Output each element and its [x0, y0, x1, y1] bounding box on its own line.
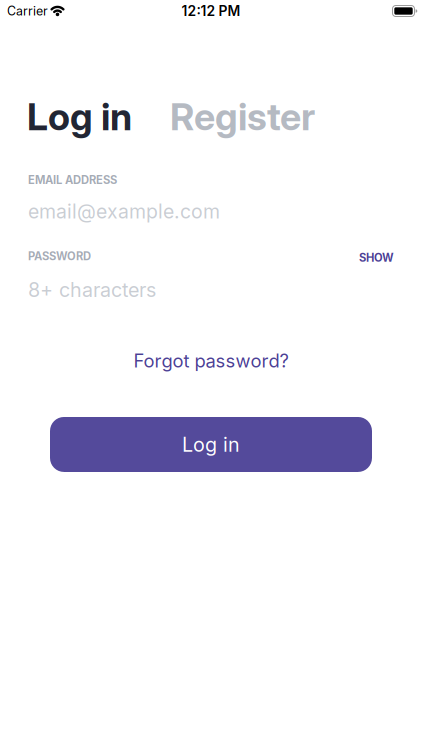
button[interactable]: Register	[170, 94, 315, 139]
staticText: Forgot password?	[133, 350, 288, 372]
staticText: Log in	[27, 94, 132, 139]
button[interactable]: Log in	[27, 94, 132, 139]
staticText: Carrier	[7, 3, 48, 18]
staticText: PASSWORD	[28, 249, 91, 263]
staticText: email@example.com	[28, 200, 220, 223]
button[interactable]: SHOW	[359, 249, 394, 263]
staticText: EMAIL ADDRESS	[28, 173, 117, 187]
button[interactable]: Forgot password?	[133, 350, 288, 372]
staticText: Register	[170, 94, 315, 139]
button[interactable]: Log in	[50, 417, 372, 472]
staticText: SHOW	[359, 251, 394, 264]
staticText: 8+ characters	[28, 278, 156, 302]
staticText: Log in	[182, 432, 240, 456]
staticText: 12:12 PM	[181, 3, 240, 19]
